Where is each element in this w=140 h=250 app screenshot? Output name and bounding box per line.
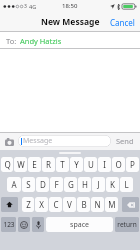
staticText: J xyxy=(97,179,100,190)
staticText: X xyxy=(39,199,44,210)
button[interactable]: Message xyxy=(18,135,111,147)
staticText: I xyxy=(103,159,106,170)
button[interactable]: Backspace xyxy=(122,196,139,212)
staticText: N xyxy=(94,199,101,210)
button[interactable]: T xyxy=(56,156,69,172)
staticText: return xyxy=(117,220,137,229)
button[interactable]: Shift xyxy=(1,196,18,212)
button[interactable]: K xyxy=(106,176,119,192)
staticText: P xyxy=(130,159,135,170)
button[interactable]: W xyxy=(14,156,27,172)
button[interactable]: Cancel xyxy=(105,13,140,32)
button[interactable]: I xyxy=(98,156,111,172)
staticText: M xyxy=(108,199,116,210)
staticText: B xyxy=(81,199,87,210)
button[interactable]: Y xyxy=(70,156,83,172)
button[interactable]: Q xyxy=(1,156,13,172)
button[interactable]: G xyxy=(64,176,77,192)
button[interactable]: 123 xyxy=(1,216,16,232)
staticText: Message xyxy=(23,136,53,146)
staticText: D xyxy=(40,179,46,190)
staticText: Cancel xyxy=(110,17,135,28)
staticText: To: xyxy=(6,36,17,46)
button[interactable]: S xyxy=(22,176,35,192)
button[interactable]: R xyxy=(42,156,55,172)
staticText: L xyxy=(124,179,129,190)
button[interactable]: Send xyxy=(114,133,136,149)
staticText: 123 xyxy=(3,220,15,229)
staticText: S xyxy=(26,179,31,190)
button[interactable]: N xyxy=(91,196,104,212)
staticText: 3 xyxy=(24,3,27,10)
button[interactable]: Take photo xyxy=(4,136,15,147)
button[interactable]: B xyxy=(77,196,90,212)
button[interactable]: H xyxy=(78,176,91,192)
staticText: 18:50 xyxy=(62,2,78,10)
button[interactable]: return xyxy=(115,216,139,232)
staticText: E xyxy=(32,159,37,170)
button[interactable]: A xyxy=(7,176,21,192)
staticText: R xyxy=(46,159,51,170)
staticText: V xyxy=(67,199,72,210)
button[interactable]: P xyxy=(126,156,139,172)
button[interactable]: Z xyxy=(22,196,34,212)
button[interactable]: M xyxy=(105,196,118,212)
button[interactable]: O xyxy=(112,156,125,172)
staticText: T xyxy=(60,159,65,170)
staticText: W xyxy=(17,159,25,170)
staticText: space xyxy=(70,220,89,230)
button[interactable]: space xyxy=(46,216,113,232)
staticText: G xyxy=(68,179,74,190)
button[interactable]: Dictation xyxy=(32,216,44,232)
staticText: H xyxy=(82,179,88,190)
staticText: O xyxy=(115,159,122,170)
button[interactable]: E xyxy=(28,156,41,172)
staticText: New Message xyxy=(41,16,100,28)
button[interactable]: To: xyxy=(0,32,140,49)
staticText: C xyxy=(53,199,59,210)
button[interactable]: L xyxy=(120,176,133,192)
button[interactable]: X xyxy=(35,196,48,212)
button[interactable]: D xyxy=(36,176,49,192)
button[interactable]: Emoji xyxy=(18,216,30,232)
staticText: Q xyxy=(4,159,11,170)
staticText: 4G xyxy=(29,3,37,10)
button[interactable]: V xyxy=(63,196,76,212)
button[interactable]: C xyxy=(49,196,62,212)
button[interactable]: J xyxy=(92,176,105,192)
staticText: Send xyxy=(116,136,134,146)
staticText: Z xyxy=(26,199,31,210)
staticText: Andy Hatzis xyxy=(20,36,62,46)
staticText: U xyxy=(88,159,94,170)
button[interactable]: F xyxy=(50,176,63,192)
staticText: K xyxy=(110,179,115,190)
staticText: A xyxy=(11,179,17,190)
staticText: F xyxy=(54,179,59,190)
button[interactable]: U xyxy=(84,156,97,172)
staticText: Y xyxy=(74,159,79,170)
